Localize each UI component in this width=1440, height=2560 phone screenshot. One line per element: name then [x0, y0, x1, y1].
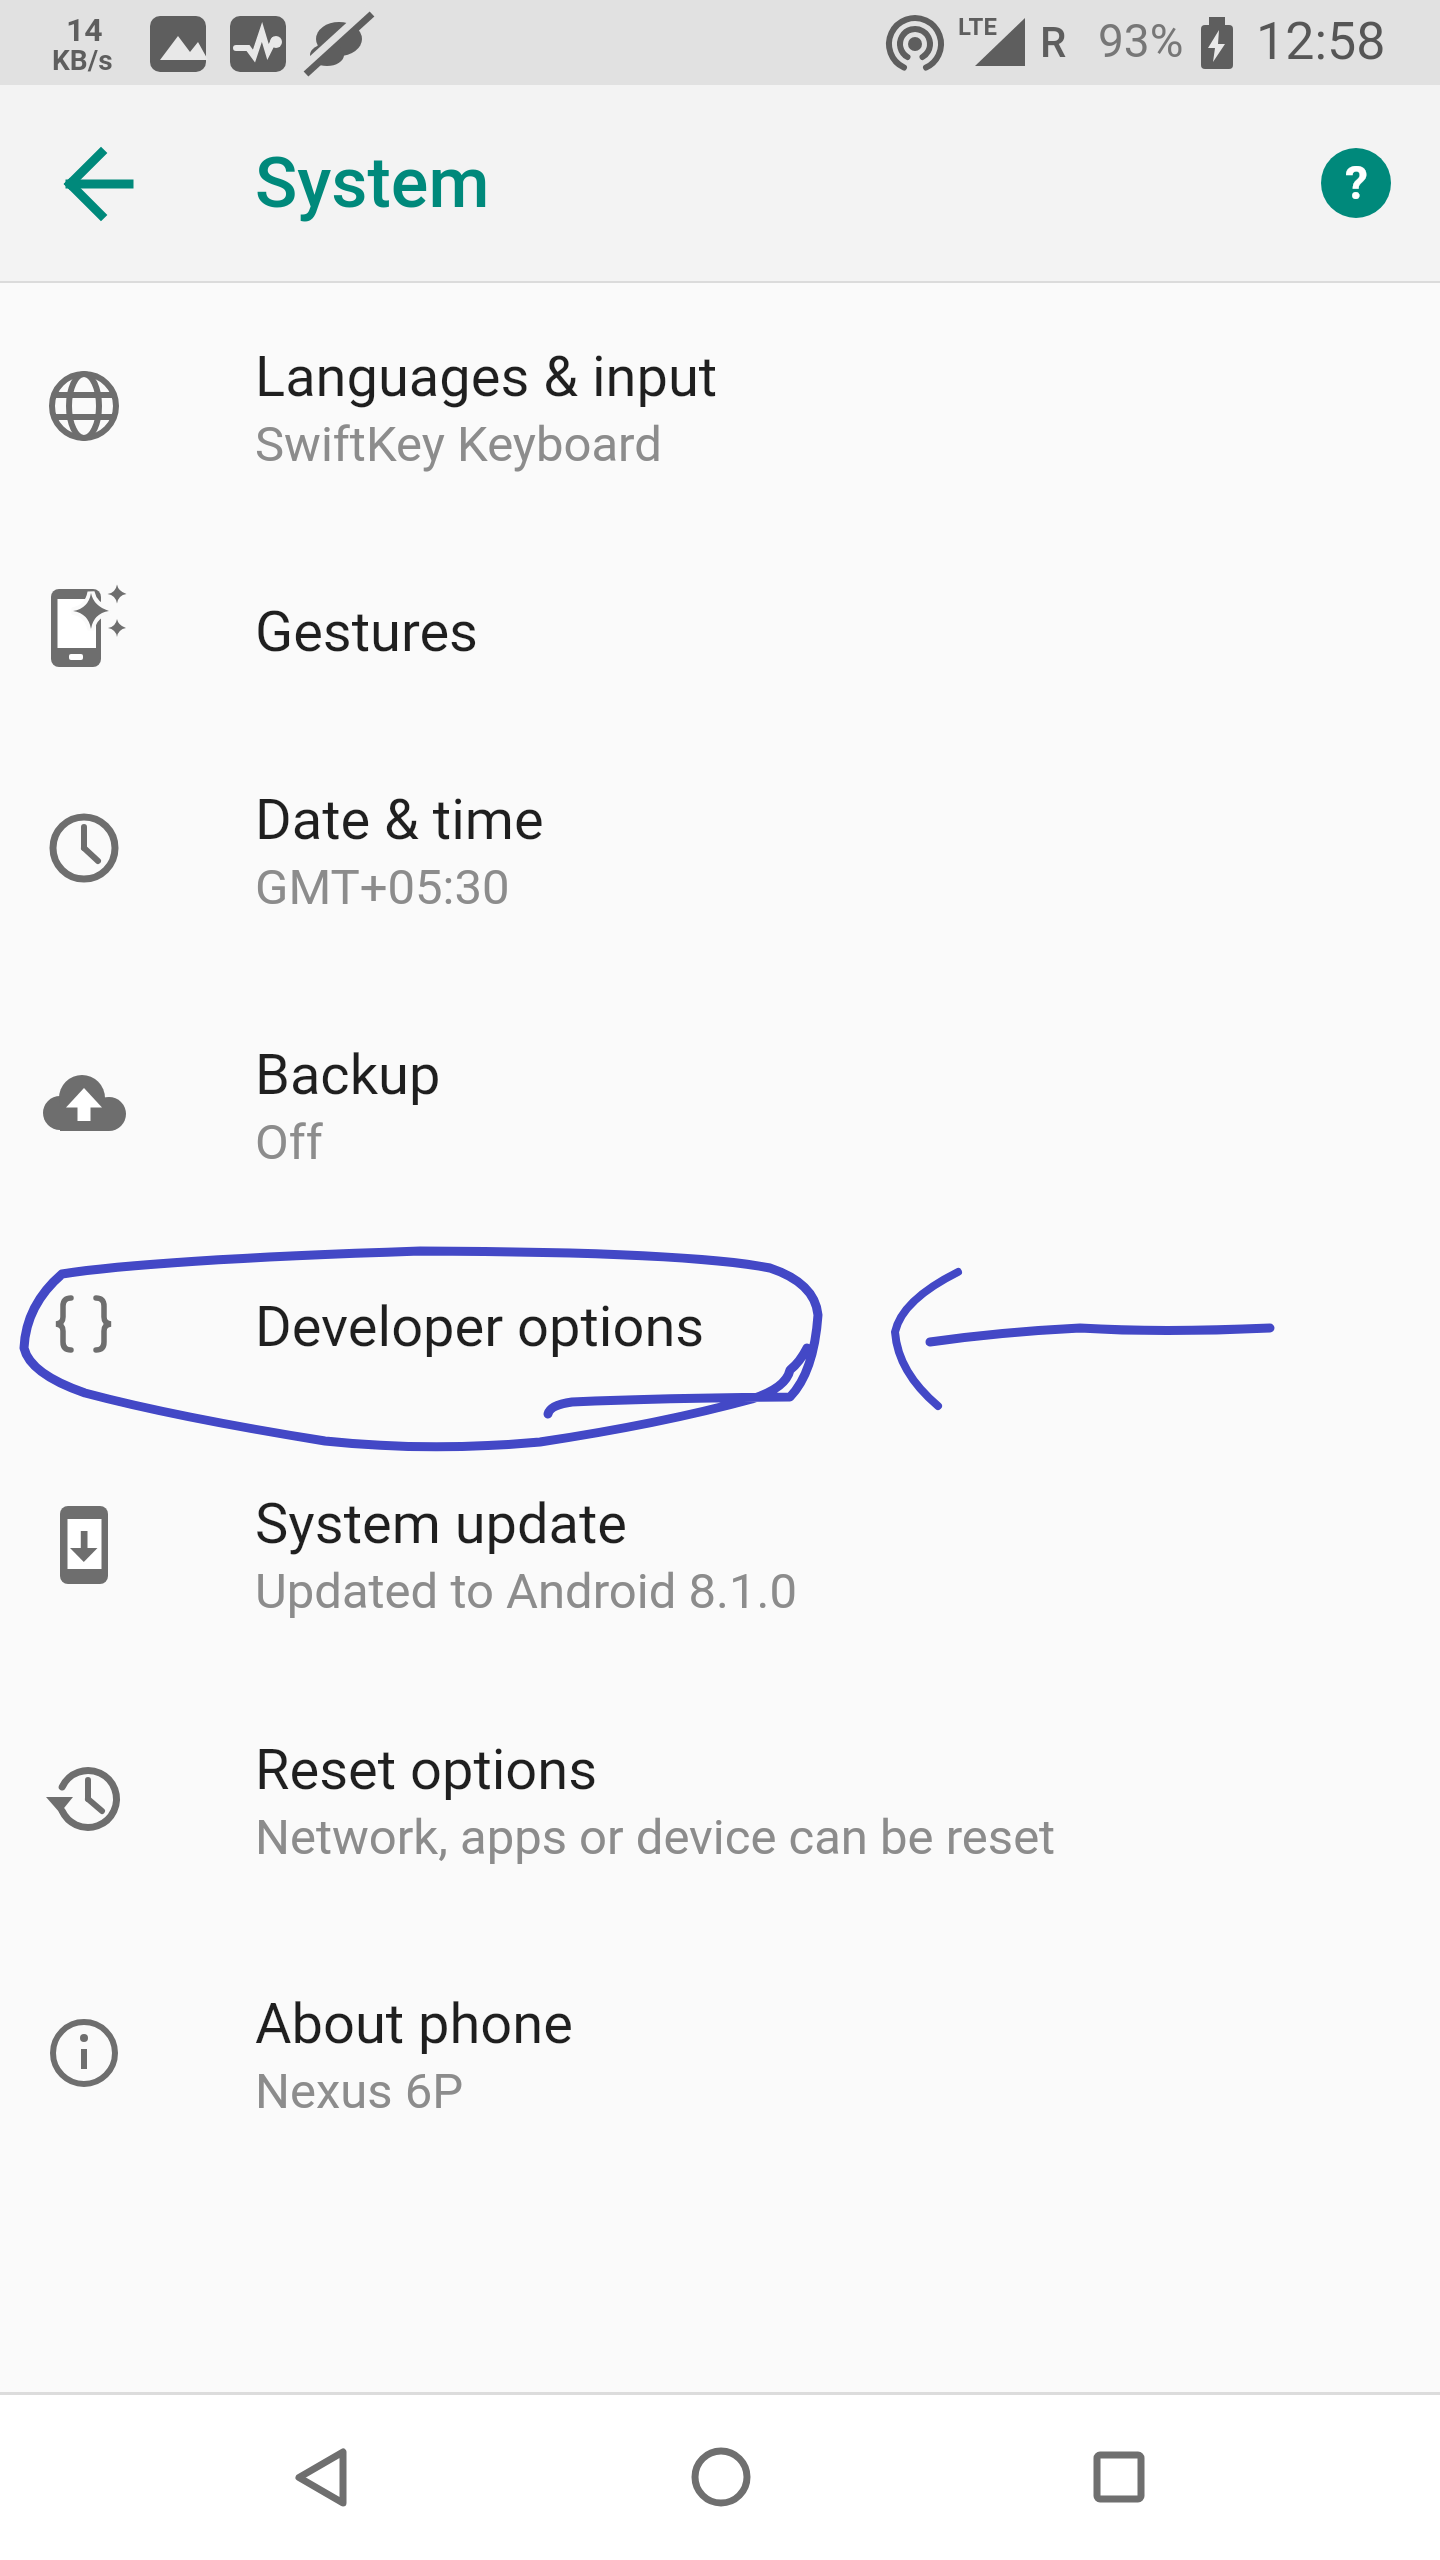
staticText: SwiftKey Keyboard [255, 416, 662, 473]
button[interactable] [1078, 2435, 1163, 2520]
staticText: LTE [958, 13, 997, 41]
button[interactable]: Gestures [0, 532, 1440, 728]
staticText: 93% [1098, 14, 1184, 68]
staticText: GMT+05:30 [255, 859, 510, 916]
staticText: Nexus 6P [255, 2063, 464, 2120]
button[interactable]: Backup [0, 977, 1440, 1229]
staticText: KB/s [52, 44, 113, 77]
staticText: Backup [255, 1042, 441, 1108]
staticText: System update [255, 1491, 628, 1557]
button[interactable]: Developer options [0, 1227, 1440, 1423]
staticText: 14 [66, 11, 103, 49]
staticText: Developer options [255, 1294, 705, 1360]
staticText: R [1040, 18, 1067, 67]
button[interactable]: System update [0, 1426, 1440, 1678]
staticText: Gestures [255, 599, 478, 665]
button[interactable]: About phone [0, 1926, 1440, 2178]
staticText: About phone [255, 1991, 573, 2057]
button[interactable]: Date & time [0, 722, 1440, 974]
staticText: System [255, 142, 490, 224]
button[interactable]: Reset options [0, 1672, 1440, 1924]
staticText: Updated to Android 8.1.0 [255, 1563, 797, 1620]
button[interactable] [680, 2435, 765, 2520]
button[interactable]: ? [1321, 148, 1391, 218]
staticText: Off [255, 1114, 323, 1171]
staticText: ? [1345, 156, 1368, 210]
button[interactable] [280, 2435, 365, 2520]
staticText: Reset options [255, 1737, 598, 1803]
button[interactable]: Languages & input [0, 279, 1440, 531]
staticText: Date & time [255, 787, 544, 853]
staticText: 12:58 [1256, 11, 1386, 72]
staticText: Languages & input [255, 344, 718, 410]
button[interactable] [50, 134, 150, 234]
staticText: Network, apps or device can be reset [255, 1809, 1056, 1866]
